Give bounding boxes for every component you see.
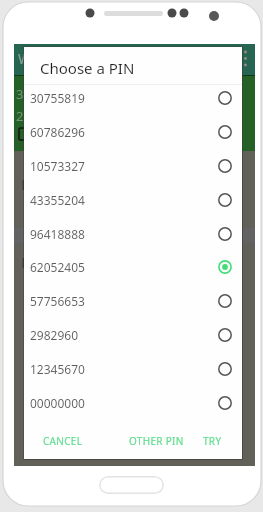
- staticText: 10573327: [30, 158, 85, 174]
- button[interactable]: TRY: [198, 428, 227, 454]
- staticText: W: [18, 49, 32, 68]
- button[interactable]: 2982960: [24, 318, 242, 352]
- button[interactable]: 62052405: [24, 250, 242, 284]
- staticText: 00000000: [30, 395, 85, 411]
- button[interactable]: OTHER PIN: [124, 428, 189, 454]
- staticText: 3: [16, 85, 24, 103]
- staticText: 96418888: [30, 226, 85, 242]
- button[interactable]: 96418888: [24, 217, 242, 251]
- staticText: TRY: [203, 434, 222, 448]
- staticText: Choose a PIN: [40, 58, 135, 78]
- staticText: CANCEL: [43, 434, 83, 448]
- button[interactable]: CANCEL: [38, 428, 88, 454]
- button[interactable]: More options: [239, 44, 255, 74]
- staticText: 60786296: [30, 124, 85, 140]
- staticText: 12345670: [30, 361, 85, 377]
- staticText: 43355204: [30, 192, 85, 208]
- button[interactable]: Home: [99, 476, 164, 494]
- button[interactable]: 60786296: [24, 115, 242, 149]
- button[interactable]: 57756653: [24, 284, 242, 318]
- staticText: 57756653: [30, 293, 85, 309]
- button[interactable]: 12345670: [24, 352, 242, 386]
- button[interactable]: 30755819: [24, 81, 242, 115]
- staticText: OTHER PIN: [129, 434, 184, 448]
- staticText: 30755819: [30, 90, 85, 106]
- button[interactable]: 43355204: [24, 183, 242, 217]
- button[interactable]: 10573327: [24, 149, 242, 183]
- staticText: 62052405: [30, 259, 85, 275]
- staticText: 2: [16, 107, 24, 125]
- staticText: 2982960: [30, 327, 79, 343]
- button[interactable]: 00000000: [24, 386, 242, 420]
